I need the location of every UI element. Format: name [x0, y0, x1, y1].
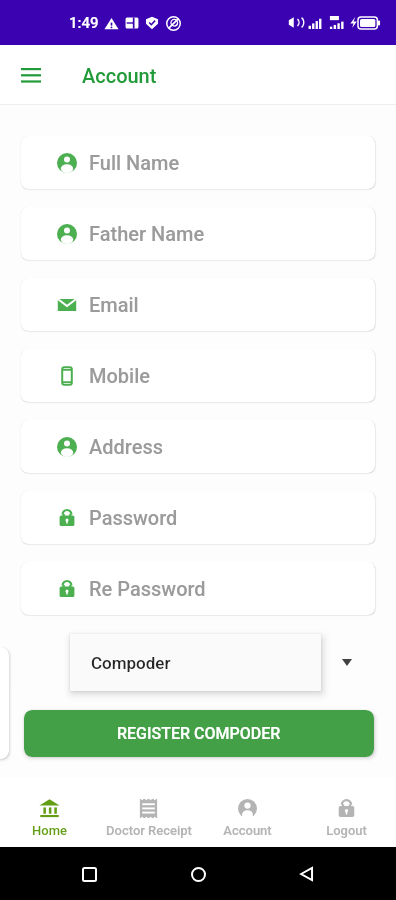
button[interactable]: Address [21, 420, 375, 473]
button[interactable]: Logout [297, 778, 396, 847]
staticText: Account [82, 64, 157, 87]
staticText: Account [223, 823, 272, 838]
staticText: Full Name [89, 151, 180, 174]
staticText: REGISTER COMPODER [117, 724, 281, 743]
button[interactable]: Email [21, 278, 375, 331]
staticText: Father Name [89, 222, 205, 245]
staticText: 1:49 [69, 14, 99, 32]
button[interactable]: Menu [11, 55, 51, 95]
staticText: Home [32, 823, 67, 838]
button[interactable]: Open dropdown [335, 650, 359, 674]
button[interactable]: Select role [0, 647, 9, 759]
button[interactable]: Account [198, 778, 297, 847]
button[interactable]: Re Password [21, 562, 375, 615]
staticText: Address [89, 435, 163, 458]
staticText: Mobile [89, 364, 150, 387]
button[interactable]: Password [21, 491, 375, 544]
button[interactable]: Home [178, 854, 218, 894]
button[interactable]: Doctor Receipt [99, 778, 198, 847]
button[interactable]: Compoder [70, 634, 321, 691]
button[interactable]: Full Name [21, 136, 375, 189]
button[interactable]: REGISTER COMPODER [24, 710, 374, 757]
staticText: Doctor Receipt [106, 823, 192, 838]
button[interactable]: Home [0, 778, 99, 847]
staticText: Password [89, 506, 178, 529]
button[interactable]: Recents [69, 854, 109, 894]
staticText: Compoder [91, 653, 171, 673]
button[interactable]: Back [287, 854, 327, 894]
button[interactable]: Father Name [21, 207, 375, 260]
staticText: Re Password [89, 577, 206, 600]
button[interactable]: Mobile [21, 349, 375, 402]
staticText: Logout [326, 823, 367, 838]
staticText: Email [89, 293, 139, 316]
